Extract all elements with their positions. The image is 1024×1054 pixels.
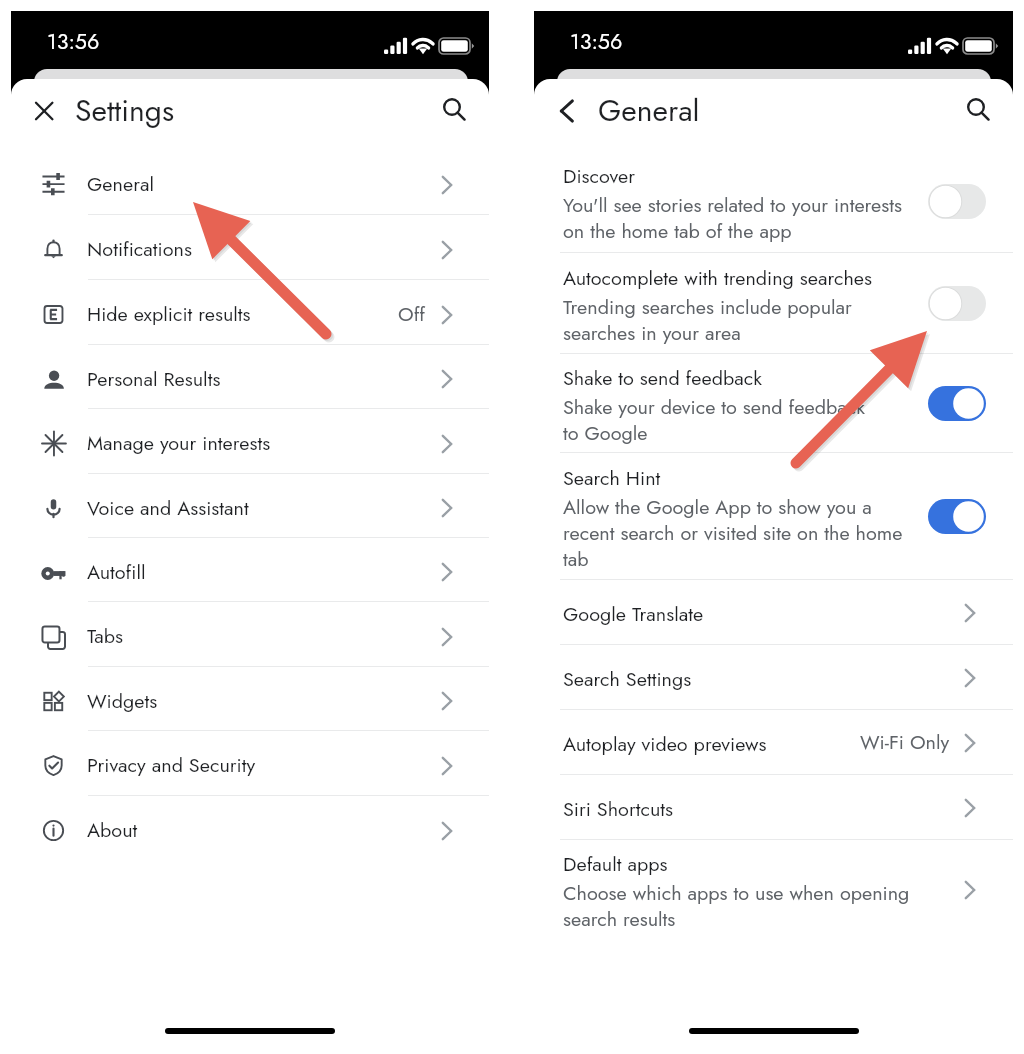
button[interactable]: Personal Results — [11, 345, 489, 409]
staticText: Autocomplete with trending searches — [563, 264, 873, 293]
button[interactable]: Notifications — [11, 215, 489, 280]
button[interactable]: Privacy and Security — [11, 731, 489, 796]
staticText: Search Settings — [563, 665, 692, 694]
staticText: Trending searches include popular search… — [563, 293, 852, 348]
button[interactable]: Switch off — [534, 253, 1013, 354]
staticText: Tabs — [87, 622, 124, 651]
staticText: Hide explicit results — [87, 300, 251, 329]
staticText: Choose which apps to use when opening se… — [563, 879, 910, 934]
button[interactable]: Switch off — [928, 184, 986, 219]
staticText: Shake to send feedback — [563, 364, 762, 393]
staticText: General — [598, 89, 700, 132]
button[interactable]: Wi-Fi Only — [534, 710, 1013, 775]
staticText: Manage your interests — [87, 429, 271, 458]
button[interactable]: Manage your interests — [11, 409, 489, 474]
button[interactable]: Switch off — [534, 150, 1013, 253]
button[interactable]: Switch on — [534, 354, 1013, 453]
button[interactable]: General — [11, 150, 489, 215]
staticText: Settings — [75, 89, 175, 132]
staticText: General — [87, 170, 154, 199]
button[interactable]: Switch on — [928, 386, 986, 421]
button[interactable]: Default apps — [534, 840, 1013, 940]
staticText: 13:56 — [47, 26, 100, 57]
staticText: Google Translate — [563, 600, 704, 629]
staticText: Allow the Google App to show you a recen… — [563, 493, 903, 574]
button[interactable]: Autofill — [11, 538, 489, 602]
staticText: Privacy and Security — [87, 751, 256, 780]
staticText: 13:56 — [570, 26, 623, 57]
button[interactable]: About — [11, 796, 489, 861]
button[interactable]: Tabs — [11, 602, 489, 667]
staticText: About — [87, 816, 138, 845]
staticText: Widgets — [87, 687, 158, 716]
staticText: You'll see stories related to your inter… — [563, 191, 902, 246]
button[interactable]: Google Translate — [534, 580, 1013, 645]
button[interactable]: Close — [22, 89, 66, 133]
staticText: Wi-Fi Only — [860, 728, 950, 757]
staticText: Discover — [563, 162, 635, 191]
button[interactable]: Hide explicit results — [11, 280, 489, 345]
button[interactable]: Voice and Assistant — [11, 474, 489, 538]
staticText: Voice and Assistant — [87, 494, 249, 523]
staticText: Off — [398, 300, 425, 329]
staticText: Default apps — [563, 850, 668, 879]
button[interactable]: Siri Shortcuts — [534, 775, 1013, 840]
button[interactable]: Widgets — [11, 667, 489, 731]
staticText: Autoplay video previews — [563, 730, 767, 759]
button[interactable]: Switch on — [534, 453, 1013, 580]
staticText: Shake your device to send feedback to Go… — [563, 393, 865, 448]
staticText: Autofill — [87, 558, 146, 587]
button[interactable]: Switch on — [928, 499, 986, 534]
staticText: Notifications — [87, 235, 192, 264]
button[interactable]: Back — [545, 89, 589, 133]
staticText: Siri Shortcuts — [563, 795, 674, 824]
button[interactable]: Switch off — [928, 286, 986, 321]
button[interactable]: Search — [432, 87, 476, 131]
button[interactable]: Search — [956, 87, 1000, 131]
staticText: Search Hint — [563, 464, 661, 493]
staticText: Personal Results — [87, 365, 221, 394]
button[interactable]: Search Settings — [534, 645, 1013, 710]
